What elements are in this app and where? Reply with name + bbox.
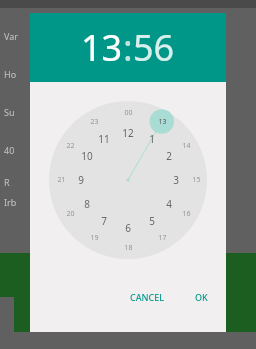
button[interactable]: OK (187, 285, 216, 309)
staticText: 22 (66, 141, 75, 151)
staticText: Ho (4, 68, 17, 80)
staticText: 4 (166, 197, 172, 211)
staticText: 15 (192, 175, 201, 185)
staticText: 12 (122, 126, 134, 140)
staticText: 11 (98, 132, 110, 146)
staticText: 9 (78, 173, 84, 187)
staticText: 3 (173, 173, 179, 187)
staticText: 5 (149, 214, 155, 228)
staticText: : (123, 23, 133, 72)
staticText: CANCEL (130, 291, 165, 303)
staticText: Su (4, 106, 15, 118)
button[interactable]: 13 (81, 23, 123, 72)
staticText: Var (4, 30, 18, 42)
staticText: 14 (182, 141, 191, 151)
staticText: 6 (125, 221, 131, 235)
staticText: 2 (166, 149, 172, 163)
staticText: 13 (158, 117, 167, 127)
staticText: 8 (84, 197, 90, 211)
staticText: 13 (81, 23, 123, 72)
staticText: 18 (124, 243, 133, 253)
staticText: 10 (81, 149, 93, 163)
staticText: 19 (90, 233, 99, 243)
button[interactable]: CANCEL (122, 285, 173, 309)
staticText: 7 (101, 214, 107, 228)
button[interactable]: 56 (133, 23, 175, 72)
staticText: 21 (57, 175, 66, 185)
staticText: 1 (149, 132, 155, 146)
staticText: 23 (90, 117, 99, 127)
button[interactable]: Clock face, select hour (49, 101, 207, 259)
staticText: 56 (133, 23, 175, 72)
staticText: Irb (4, 196, 17, 208)
staticText: R (4, 176, 10, 188)
staticText: 40 (4, 144, 15, 156)
staticText: 17 (158, 233, 167, 243)
staticText: 20 (66, 209, 75, 219)
staticText: 00 (124, 108, 133, 118)
staticText: 16 (182, 209, 191, 219)
staticText: OK (195, 291, 208, 303)
